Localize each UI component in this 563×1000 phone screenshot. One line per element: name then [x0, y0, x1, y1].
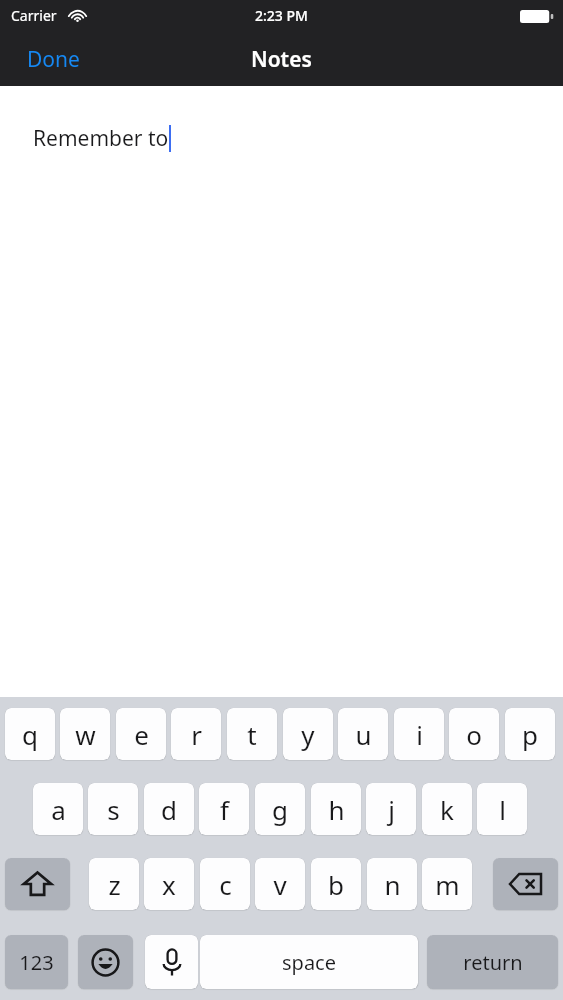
button[interactable]: b [311, 858, 361, 910]
staticText: m [435, 867, 460, 902]
button[interactable]: w [60, 708, 110, 760]
button[interactable]: Emoji [78, 935, 133, 989]
button[interactable]: Dictate [145, 935, 198, 989]
button[interactable]: f [199, 783, 249, 835]
staticText: f [220, 792, 229, 827]
staticText: z [108, 867, 121, 902]
staticText: d [161, 792, 177, 827]
button[interactable]: e [116, 708, 166, 760]
staticText: u [355, 717, 372, 752]
button[interactable]: j [366, 783, 416, 835]
staticText: space [282, 949, 336, 976]
button[interactable]: n [367, 858, 417, 910]
button[interactable]: o [449, 708, 499, 760]
staticText: Carrier [11, 6, 57, 25]
button[interactable]: i [394, 708, 444, 760]
button[interactable]: x [144, 858, 194, 910]
button[interactable]: d [144, 783, 194, 835]
staticText: g [272, 792, 288, 827]
button[interactable]: z [89, 858, 139, 910]
button[interactable]: 123 [5, 935, 68, 989]
button[interactable]: g [255, 783, 305, 835]
button[interactable]: Backspace [493, 858, 558, 910]
staticText: 123 [19, 949, 54, 976]
staticText: n [384, 867, 401, 902]
staticText: return [463, 949, 523, 976]
button[interactable]: u [338, 708, 388, 760]
button[interactable]: return [427, 935, 558, 989]
staticText: c [219, 867, 232, 902]
staticText: w [75, 717, 96, 752]
button[interactable]: v [255, 858, 305, 910]
staticText: q [22, 717, 38, 752]
staticText: b [328, 867, 344, 902]
button[interactable]: m [422, 858, 472, 910]
staticText: o [466, 717, 482, 752]
staticText: j [388, 792, 395, 827]
staticText: r [191, 717, 202, 752]
button[interactable]: space [200, 935, 418, 989]
button[interactable]: a [33, 783, 83, 835]
staticText: v [273, 867, 287, 902]
button[interactable]: q [5, 708, 55, 760]
staticText: y [301, 717, 315, 752]
staticText: Done [27, 45, 80, 74]
staticText: e [134, 717, 149, 752]
button[interactable]: Shift [5, 858, 70, 910]
staticText: h [328, 792, 345, 827]
staticText: 2:23 PM [255, 6, 308, 25]
button[interactable]: c [200, 858, 250, 910]
staticText: k [440, 792, 454, 827]
button[interactable]: k [422, 783, 472, 835]
staticText: Remember to [33, 124, 169, 153]
staticText: x [162, 867, 176, 902]
button[interactable]: p [505, 708, 555, 760]
button[interactable]: l [477, 783, 527, 835]
staticText: Notes [251, 45, 312, 74]
button[interactable]: s [88, 783, 138, 835]
button[interactable]: h [311, 783, 361, 835]
staticText: a [51, 792, 66, 827]
staticText: t [247, 717, 257, 752]
staticText: l [499, 792, 506, 827]
staticText: s [107, 792, 120, 827]
button[interactable]: y [283, 708, 333, 760]
button[interactable]: r [171, 708, 221, 760]
button[interactable]: Done [20, 42, 87, 77]
staticText: p [522, 717, 538, 752]
staticText: i [416, 717, 423, 752]
button[interactable]: t [227, 708, 277, 760]
